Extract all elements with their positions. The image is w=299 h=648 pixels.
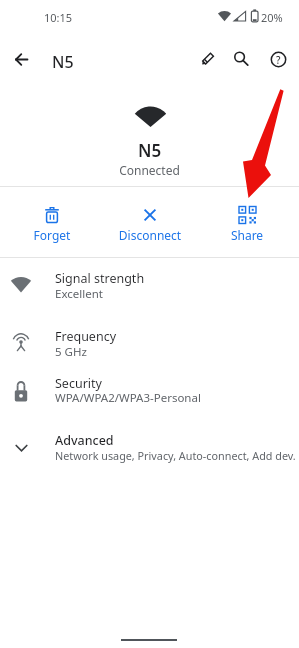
button[interactable]: Forget <box>22 196 82 246</box>
button[interactable]: Advanced <box>0 426 299 470</box>
staticText: WPA/WPA2/WPA3-Personal <box>55 390 201 406</box>
staticText: Frequency <box>55 328 117 345</box>
staticText: Disconnect <box>115 227 185 243</box>
button[interactable]: Disconnect <box>115 196 185 246</box>
button[interactable]: Signal strength <box>0 263 299 307</box>
staticText: Forget <box>22 227 82 243</box>
staticText: 5 GHz <box>55 344 87 360</box>
staticText: ? <box>276 53 281 67</box>
staticText: N5 <box>52 51 74 73</box>
staticText: Security <box>55 375 102 392</box>
staticText: Share <box>217 227 277 243</box>
button[interactable] <box>228 45 256 74</box>
button[interactable]: Frequency <box>0 320 299 364</box>
staticText: Signal strength <box>55 270 145 287</box>
staticText: Excellent <box>55 286 103 302</box>
staticText: N5 <box>0 139 299 162</box>
staticText: Connected <box>0 162 299 178</box>
staticText: Network usage, Privacy, Auto-connect, Ad… <box>55 448 295 463</box>
button[interactable] <box>193 45 221 74</box>
staticText: Advanced <box>55 432 114 449</box>
staticText: 20% <box>261 10 283 25</box>
button[interactable] <box>7 45 36 74</box>
staticText: 10:15 <box>44 10 73 25</box>
button[interactable]: Share <box>217 196 277 246</box>
button[interactable]: ? <box>264 45 293 74</box>
button[interactable]: Security <box>0 368 299 412</box>
